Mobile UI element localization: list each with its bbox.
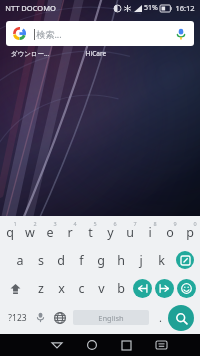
button[interactable]: v: [91, 274, 111, 303]
staticText: b: [117, 280, 125, 297]
button[interactable]: x: [51, 274, 71, 303]
button[interactable]: Switch keyboard: [144, 334, 179, 356]
button[interactable]: Emoji: [177, 279, 196, 298]
staticText: f: [79, 252, 84, 269]
button[interactable]: Shift: [0, 274, 30, 303]
button[interactable]: w: [20, 218, 40, 246]
staticText: a: [16, 252, 24, 269]
staticText: w: [25, 224, 35, 241]
button[interactable]: a: [9, 246, 30, 274]
button[interactable]: English: [73, 310, 149, 325]
button[interactable]: h: [111, 246, 131, 274]
button[interactable]: ?123: [4, 303, 30, 332]
staticText: l: [179, 252, 183, 269]
staticText: d: [57, 252, 65, 269]
button[interactable]: l: [171, 246, 191, 274]
button[interactable]: g: [91, 246, 111, 274]
button[interactable]: q: [0, 218, 20, 246]
button[interactable]: Change language: [50, 303, 70, 332]
button[interactable]: e: [40, 218, 60, 246]
staticText: c: [78, 280, 85, 297]
button[interactable]: .: [152, 303, 168, 332]
button[interactable]: z: [30, 274, 51, 303]
button[interactable]: Move cursor left: [133, 279, 152, 298]
staticText: e: [46, 224, 54, 241]
button[interactable]: b: [111, 274, 131, 303]
button[interactable]: Clipboard: [176, 251, 194, 269]
staticText: 51%: [144, 3, 158, 13]
button[interactable]: Recent apps: [109, 334, 144, 356]
staticText: o: [166, 224, 174, 241]
staticText: ダウンロー…: [4, 49, 56, 58]
staticText: u: [126, 224, 134, 241]
button[interactable]: p: [180, 218, 200, 246]
button[interactable]: t: [80, 218, 100, 246]
staticText: 5: [93, 220, 97, 227]
staticText: ?123: [8, 312, 27, 324]
button[interactable]: f: [71, 246, 91, 274]
staticText: 0: [193, 220, 197, 227]
staticText: i: [148, 224, 152, 241]
button[interactable]: ダウンロー…: [4, 49, 56, 58]
staticText: x: [58, 280, 65, 297]
button[interactable]: HiCare: [70, 49, 122, 58]
staticText: q: [6, 224, 14, 241]
staticText: 7: [133, 220, 137, 227]
staticText: 8: [153, 220, 157, 227]
staticText: m: [155, 280, 167, 297]
staticText: v: [98, 280, 105, 297]
staticText: r: [67, 224, 73, 241]
staticText: 3: [53, 220, 57, 227]
staticText: .: [159, 310, 162, 325]
staticText: k: [158, 252, 165, 269]
staticText: HiCare: [70, 49, 122, 58]
button[interactable]: r: [60, 218, 80, 246]
button[interactable]: Delete: [171, 274, 200, 303]
staticText: n: [137, 280, 145, 297]
staticText: j: [139, 252, 143, 269]
staticText: t: [88, 224, 93, 241]
other: Google: [13, 27, 26, 40]
staticText: z: [38, 280, 44, 297]
button[interactable]: k: [151, 246, 171, 274]
staticText: g: [97, 252, 105, 269]
button[interactable]: n: [131, 274, 151, 303]
button[interactable]: i: [140, 218, 160, 246]
staticText: s: [38, 252, 44, 269]
button[interactable]: u: [120, 218, 140, 246]
button[interactable]: Search: [168, 305, 194, 331]
staticText: 6: [113, 220, 117, 227]
staticText: NTT DOCOMO: [5, 3, 56, 13]
button[interactable]: y: [100, 218, 120, 246]
staticText: h: [117, 252, 125, 269]
staticText: y: [107, 224, 114, 241]
button[interactable]: Move cursor right: [155, 279, 174, 298]
button[interactable]: Hide keyboard: [39, 334, 74, 356]
staticText: 2: [33, 220, 37, 227]
button[interactable]: Google: [6, 21, 194, 46]
button[interactable]: d: [51, 246, 71, 274]
staticText: 16:12: [175, 3, 195, 13]
button[interactable]: m: [151, 274, 171, 303]
staticText: 1: [13, 220, 17, 227]
staticText: 9: [173, 220, 177, 227]
staticText: 4: [73, 220, 77, 227]
other: Voice search: [175, 28, 187, 40]
button[interactable]: j: [131, 246, 151, 274]
button[interactable]: o: [160, 218, 180, 246]
button[interactable]: c: [71, 274, 91, 303]
staticText: 検索...: [36, 28, 62, 40]
button[interactable]: Voice input: [30, 303, 50, 332]
button[interactable]: s: [30, 246, 51, 274]
staticText: English: [98, 313, 124, 323]
button[interactable]: Home: [74, 334, 109, 356]
staticText: p: [186, 224, 194, 241]
